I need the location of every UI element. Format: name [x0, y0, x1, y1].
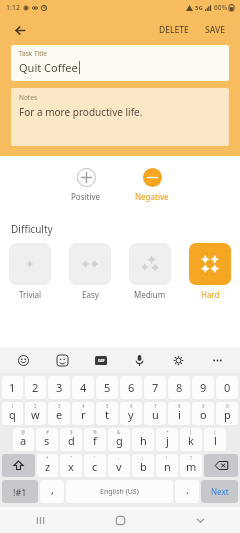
staticText: y — [128, 407, 134, 422]
button[interactable]: @ — [13, 428, 34, 451]
button[interactable]: Stickers — [53, 351, 71, 369]
button[interactable]: Task Title — [11, 45, 229, 81]
button[interactable]: Shift — [2, 454, 35, 477]
button[interactable]: - — [132, 428, 154, 451]
button[interactable]: . — [175, 480, 199, 503]
staticText: @ — [21, 429, 26, 435]
staticText: 1:12 — [6, 3, 20, 13]
button[interactable]: 9 — [192, 402, 214, 425]
staticText: 1 — [9, 380, 16, 395]
staticText: English (US) — [100, 487, 139, 497]
button[interactable]: 0 — [216, 376, 238, 399]
button[interactable]: 1 — [2, 402, 23, 425]
button[interactable]: & — [108, 428, 130, 451]
button[interactable]: English (US) — [66, 480, 173, 503]
staticText: 2 — [32, 380, 39, 395]
button[interactable]: DELETE — [155, 21, 193, 39]
button[interactable]: : — [108, 454, 130, 477]
button[interactable]: 6 — [120, 376, 142, 399]
staticText: 1 — [11, 403, 14, 409]
button[interactable]: 6 — [120, 402, 142, 425]
button[interactable]: Home — [80, 507, 160, 533]
button[interactable]: Keyboard settings — [169, 351, 187, 369]
button[interactable]: 0 — [216, 402, 238, 425]
staticText: v — [116, 459, 122, 474]
staticText: , — [51, 482, 54, 497]
button[interactable]: Medium — [129, 243, 171, 300]
button[interactable]: Back — [160, 507, 240, 533]
button[interactable]: GIF — [92, 351, 110, 369]
button[interactable]: SAVE — [201, 21, 229, 39]
staticText: ; — [142, 455, 144, 461]
button[interactable]: ; — [132, 454, 154, 477]
button[interactable]: * — [37, 454, 58, 477]
button[interactable]: Emoji — [14, 351, 32, 369]
staticText: Task Title — [19, 49, 47, 58]
button[interactable]: + — [156, 428, 178, 451]
button[interactable]: !#1 — [2, 480, 38, 503]
staticText: Positive — [71, 191, 101, 202]
button[interactable]: Hard — [189, 243, 231, 300]
button[interactable]: 8 — [168, 376, 190, 399]
button[interactable]: , — [40, 480, 64, 503]
button[interactable]: ' — [84, 454, 106, 477]
staticText: 8 — [176, 380, 183, 395]
staticText: n — [164, 459, 171, 474]
staticText: 6 — [128, 380, 135, 395]
staticText: x — [68, 459, 74, 474]
staticText: 0 — [226, 403, 229, 409]
staticText: 9 — [200, 380, 207, 395]
button[interactable]: 3 — [48, 376, 70, 399]
button[interactable]: Voice input — [130, 351, 148, 369]
staticText: 8 — [178, 403, 181, 409]
staticText: GIF — [98, 358, 105, 363]
button[interactable]: " — [60, 454, 82, 477]
staticText: h — [140, 433, 147, 448]
button[interactable]: ) — [204, 428, 226, 451]
staticText: 5G — [195, 4, 203, 12]
button[interactable]: Next — [201, 480, 238, 503]
staticText: 5 — [106, 403, 109, 409]
button[interactable]: 5 — [96, 376, 118, 399]
button[interactable]: Back — [9, 19, 31, 41]
staticText: Quit Coffee — [19, 60, 78, 75]
button[interactable]: More options — [208, 351, 226, 369]
staticText: 3 — [58, 403, 61, 409]
button[interactable]: Easy — [69, 243, 111, 300]
button[interactable]: Recent apps — [0, 507, 80, 533]
staticText: * — [46, 455, 49, 461]
button[interactable]: 2 — [25, 402, 46, 425]
staticText: l — [214, 433, 217, 448]
button[interactable]: 7 — [144, 402, 166, 425]
staticText: & — [117, 429, 121, 435]
button[interactable]: $ — [60, 428, 82, 451]
button[interactable]: 7 — [144, 376, 166, 399]
staticText: z — [45, 459, 51, 474]
button[interactable]: 8 — [168, 402, 190, 425]
staticText: f — [93, 433, 97, 448]
button[interactable]: 5 — [96, 402, 118, 425]
button[interactable]: % — [84, 428, 106, 451]
button[interactable]: Trivial — [9, 243, 51, 300]
button[interactable]: Positive — [62, 166, 110, 204]
staticText: b — [140, 459, 147, 474]
button[interactable]: 3 — [48, 402, 70, 425]
button[interactable]: ! — [156, 454, 178, 477]
staticText: ? — [190, 455, 192, 461]
staticText: !#1 — [13, 486, 27, 498]
button[interactable]: 1 — [2, 376, 23, 399]
button[interactable]: Backspace — [204, 454, 238, 477]
staticText: g — [116, 433, 123, 448]
button[interactable]: 4 — [72, 402, 94, 425]
button[interactable]: ( — [180, 428, 202, 451]
button[interactable]: 4 — [72, 376, 94, 399]
staticText: m — [186, 459, 197, 474]
button[interactable]: 9 — [192, 376, 214, 399]
button[interactable]: Negative — [126, 166, 178, 204]
button[interactable]: Notes — [11, 88, 229, 146]
button[interactable]: # — [36, 428, 58, 451]
button[interactable]: ? — [180, 454, 202, 477]
staticText: For a more productive life. — [19, 105, 143, 119]
staticText: - — [142, 429, 144, 435]
button[interactable]: 2 — [25, 376, 46, 399]
